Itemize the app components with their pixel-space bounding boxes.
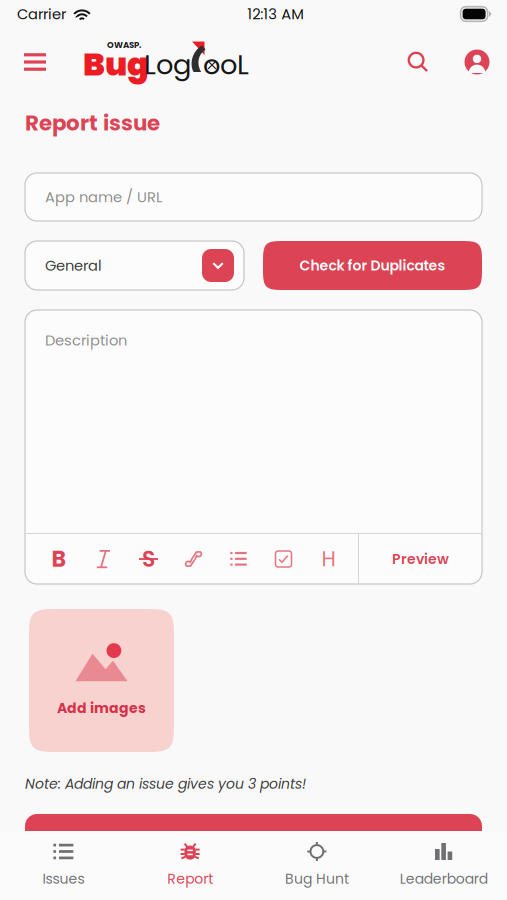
staticText: H (321, 544, 335, 573)
button[interactable]: Check for Duplicates (263, 241, 482, 290)
button[interactable]: Account (456, 41, 498, 83)
button[interactable]: Menu (13, 40, 57, 84)
staticText: Report (167, 869, 213, 889)
staticText: 12:13 AM (247, 4, 304, 24)
staticText: ooL (203, 45, 249, 84)
staticText: Bug (83, 42, 149, 87)
staticText: Preview (392, 549, 449, 569)
staticText: Leaderboard (400, 869, 488, 889)
staticText: S (142, 544, 155, 574)
button[interactable]: Search (398, 42, 438, 82)
staticText: Log (144, 45, 191, 84)
staticText: Bug Hunt (285, 869, 349, 889)
button[interactable]: B (36, 534, 81, 584)
button[interactable]: Leaderboard (380, 831, 507, 900)
button[interactable]: Add images (29, 609, 174, 752)
staticText: Report issue (25, 108, 160, 138)
button[interactable] (81, 534, 126, 584)
staticText: General (45, 255, 102, 276)
staticText: Description (45, 330, 127, 350)
staticText: App name / URL (45, 187, 162, 207)
button[interactable]: Checklist (261, 534, 306, 584)
button[interactable]: Report (127, 831, 254, 900)
staticText: Note: Adding an issue gives you 3 points… (25, 774, 306, 794)
staticText: Issues (42, 869, 84, 889)
button[interactable]: H (306, 534, 351, 584)
staticText: Carrier (17, 4, 66, 24)
button[interactable]: Link (171, 534, 216, 584)
button[interactable] (25, 814, 482, 860)
staticText: B (51, 544, 65, 574)
button[interactable]: Issues (0, 831, 127, 900)
button[interactable]: Bug Hunt (253, 831, 380, 900)
staticText: Check for Duplicates (299, 256, 445, 275)
button[interactable]: Preview (359, 534, 482, 584)
staticText: Add images (57, 698, 146, 718)
staticText: OWASP. (107, 39, 141, 51)
button[interactable]: General (25, 241, 244, 290)
button[interactable]: S (126, 534, 171, 584)
button[interactable]: Bulleted list (216, 534, 261, 584)
